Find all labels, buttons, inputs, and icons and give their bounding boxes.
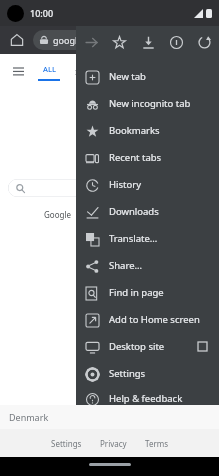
button[interactable]: Menu [11, 65, 25, 79]
staticText: Privacy [100, 438, 127, 449]
staticText: Desktop site [109, 340, 165, 353]
staticText: New incognito tab [109, 97, 191, 110]
staticText: Denmark [9, 411, 49, 423]
button[interactable]: New tab [76, 63, 219, 90]
button[interactable]: New incognito tab [76, 90, 219, 117]
staticText: Recent tabs [109, 151, 162, 164]
button[interactable]: Privacy [91, 438, 136, 449]
staticText: Google [44, 209, 74, 220]
button[interactable]: Translate… [76, 225, 219, 252]
staticText: Settings [51, 438, 82, 449]
staticText: Terms [145, 438, 169, 449]
button[interactable]: Bookmarks [76, 117, 219, 144]
staticText: Add to Home screen [109, 313, 200, 326]
button[interactable]: Downloads [76, 198, 219, 225]
button[interactable]: Forward [78, 29, 104, 55]
button[interactable]: Home [5, 28, 29, 52]
button[interactable]: Reload [191, 29, 217, 55]
button[interactable]: Download [135, 29, 161, 55]
staticText: Help & feedback [109, 392, 183, 405]
button[interactable]: History [76, 171, 219, 198]
staticText: History [109, 178, 141, 191]
button[interactable]: Settings [76, 360, 219, 387]
button[interactable]: Desktop site [76, 333, 219, 360]
staticText: Share… [109, 259, 143, 272]
staticText: Downloads [109, 205, 159, 218]
staticText: IMA [75, 67, 90, 77]
staticText: google.com [53, 34, 103, 46]
button[interactable]: Add to Home screen [76, 306, 219, 333]
button[interactable]: Find in page [76, 279, 219, 306]
button[interactable]: Help & feedback [76, 387, 219, 410]
button[interactable]: Page info [163, 29, 189, 55]
button[interactable]: Terms [136, 438, 178, 449]
button[interactable]: Settings [42, 438, 91, 449]
button[interactable]: Bookmark [106, 29, 132, 55]
button[interactable] [8, 179, 128, 197]
button[interactable]: Recent tabs [76, 144, 219, 171]
staticText: Translate… [109, 232, 158, 245]
staticText: ALL [43, 64, 56, 74]
staticText: Settings [109, 367, 146, 380]
staticText: 10:00 [30, 7, 54, 19]
button[interactable]: google.com [33, 30, 189, 50]
staticText: New tab [109, 70, 146, 83]
staticText: Find in page [109, 286, 164, 299]
staticText: Bookmarks [109, 124, 160, 137]
button[interactable]: Share… [76, 252, 219, 279]
